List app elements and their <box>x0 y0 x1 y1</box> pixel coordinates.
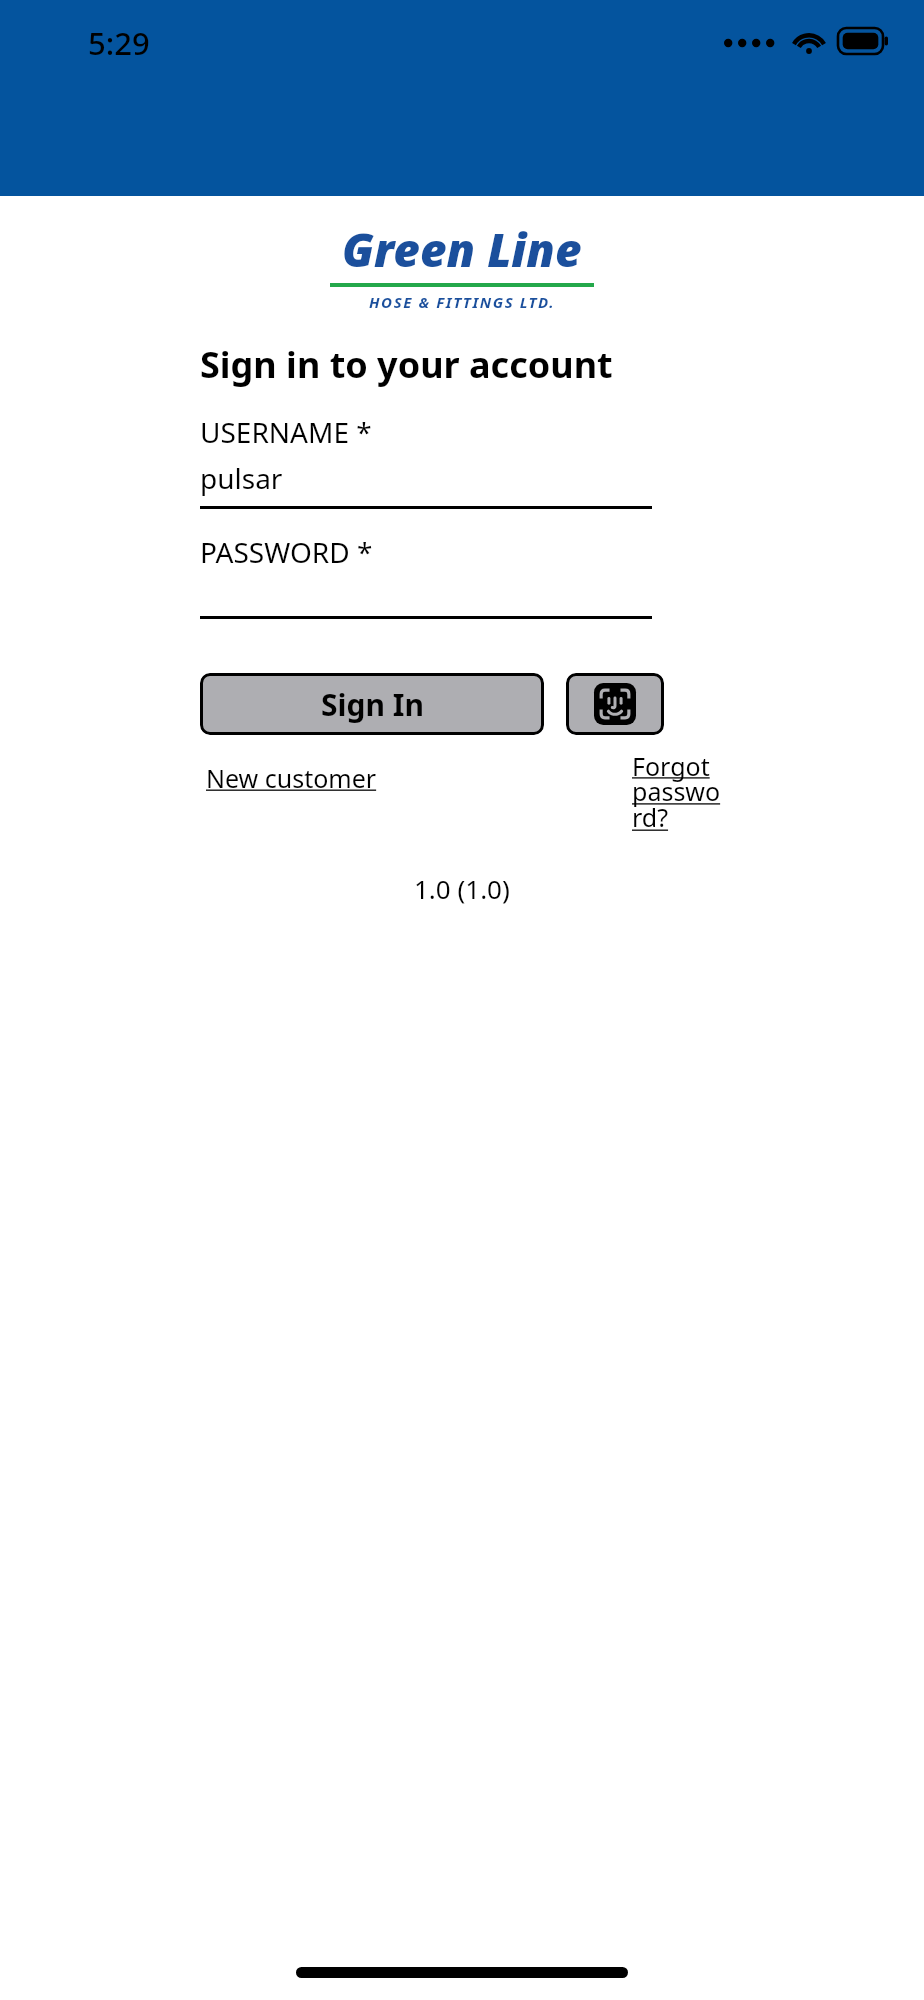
staticText: pulsar <box>200 459 283 497</box>
button[interactable]: New customer <box>206 761 377 795</box>
staticText: PASSWORD * <box>200 533 373 571</box>
staticText: HOSE & FITTINGS LTD. <box>369 292 556 312</box>
staticText: Green Line <box>342 218 582 281</box>
button[interactable]: Sign In <box>200 673 544 735</box>
button[interactable] <box>200 579 652 619</box>
staticText: USERNAME * <box>200 413 372 451</box>
button[interactable]: pulsar <box>200 459 652 509</box>
staticText: 5:29 <box>88 22 150 64</box>
button[interactable]: Forgot password? <box>632 749 724 835</box>
staticText: Forgot password? <box>632 749 724 835</box>
staticText: Sign in to your account <box>200 340 613 389</box>
staticText: New customer <box>206 761 377 795</box>
button[interactable]: Sign in with Face ID <box>566 673 664 735</box>
staticText: Sign In <box>321 684 424 725</box>
staticText: 1.0 (1.0) <box>414 871 510 906</box>
